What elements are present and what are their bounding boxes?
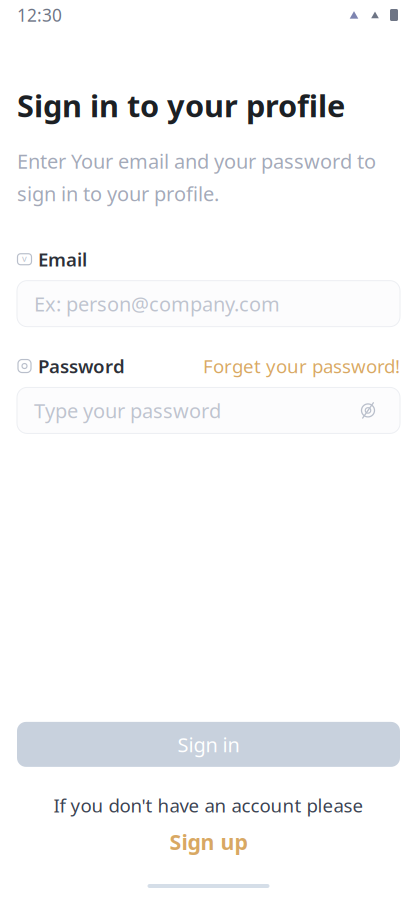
staticText: Sign up: [169, 828, 247, 856]
staticText: Sign in to your profile: [17, 85, 345, 126]
staticText: Enter Your email and your password to si…: [17, 148, 376, 207]
staticText: Password: [38, 354, 125, 378]
button[interactable]: Forget your password!: [203, 354, 400, 378]
button[interactable]: Show password: [353, 395, 383, 425]
button[interactable]: Sign in: [17, 722, 400, 767]
staticText: Ex: person@company.com: [34, 290, 280, 317]
staticText: 12:30: [17, 3, 62, 26]
staticText: Sign in: [177, 731, 239, 758]
staticText: v: [22, 252, 27, 264]
staticText: Forget your password!: [203, 354, 400, 378]
staticText: Type your password: [34, 397, 221, 424]
staticText: If you don't have an account please: [53, 793, 363, 818]
button[interactable]: Sign up: [151, 824, 265, 860]
staticText: Email: [38, 247, 87, 272]
